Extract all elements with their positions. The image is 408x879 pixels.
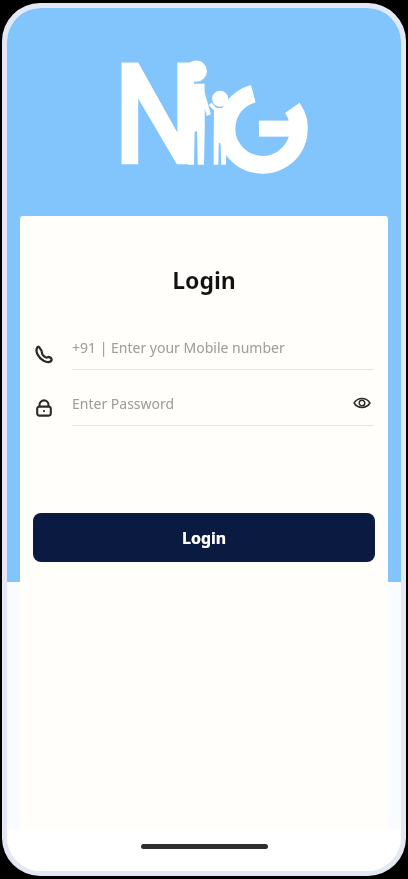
button[interactable]: Show password [350, 391, 374, 415]
button[interactable]: Login [33, 513, 375, 562]
staticText: Login [182, 527, 227, 549]
staticText: Enter Password [72, 394, 350, 413]
staticText: +91 | Enter your Mobile number [72, 338, 285, 357]
button[interactable]: Phone [34, 333, 374, 375]
button[interactable]: Password [34, 387, 374, 429]
staticText: Login [20, 264, 388, 295]
other: Password [34, 398, 54, 418]
other: Phone [34, 344, 54, 364]
